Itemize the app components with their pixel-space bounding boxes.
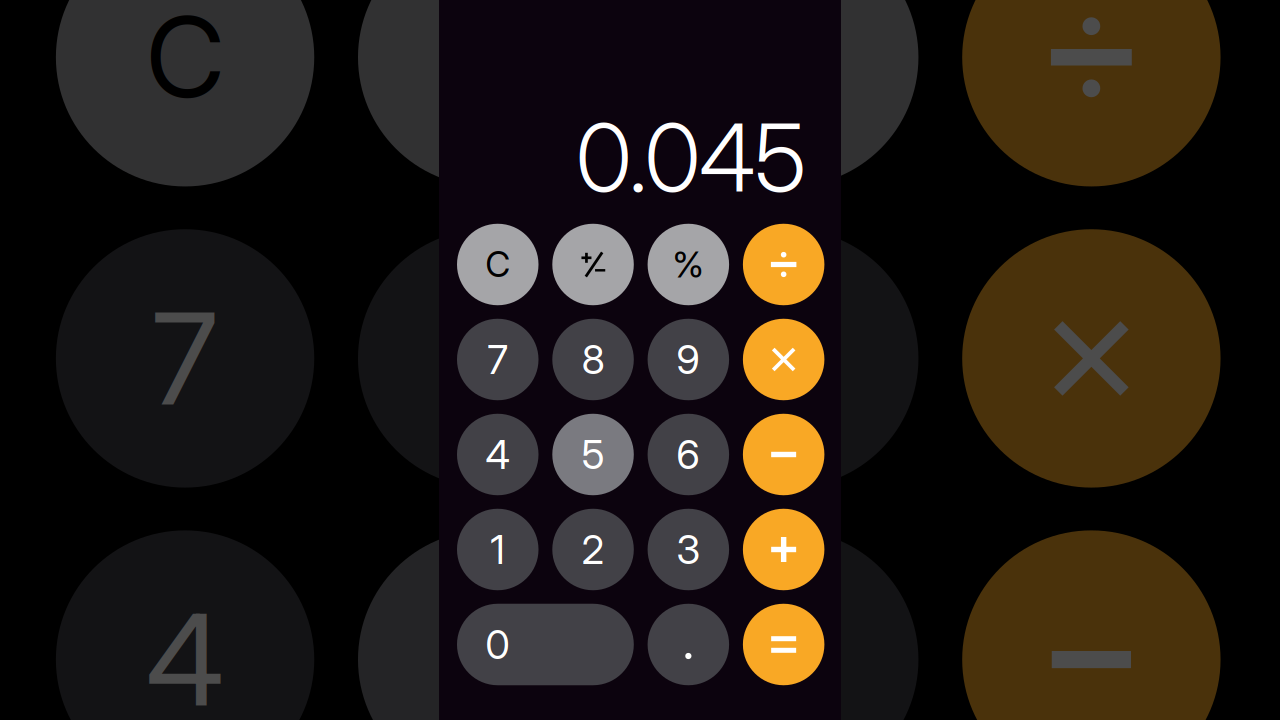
button[interactable]: 9 xyxy=(648,319,729,400)
staticText: % xyxy=(672,243,704,286)
staticText: 2 xyxy=(581,525,604,574)
button[interactable]: 3 xyxy=(648,509,729,590)
staticText: 1 xyxy=(486,525,501,574)
staticText: 0.045 xyxy=(572,101,802,214)
staticText: 8 xyxy=(581,335,604,384)
staticText: 3 xyxy=(672,525,696,574)
button[interactable]: 2 xyxy=(552,509,634,590)
button[interactable]: Multiply xyxy=(743,319,824,400)
button[interactable]: Minus xyxy=(743,414,824,495)
button[interactable]: 0 xyxy=(457,604,634,685)
staticText: 3 xyxy=(676,525,700,574)
button[interactable]: Equals xyxy=(743,604,824,685)
staticText: 5 xyxy=(581,430,604,479)
button[interactable]: Plus minus xyxy=(552,224,634,305)
button[interactable]: 4 xyxy=(457,414,538,495)
staticText: 8 xyxy=(577,335,600,384)
button[interactable]: 5 xyxy=(552,414,634,495)
staticText: 9 xyxy=(676,335,700,384)
staticText: 7 xyxy=(483,335,504,384)
staticText: % xyxy=(668,243,700,286)
staticText: 7 xyxy=(487,335,508,384)
staticText: 6 xyxy=(672,430,696,479)
staticText: 9 xyxy=(672,335,696,384)
button[interactable]: Divide xyxy=(743,224,824,305)
staticText: 1 xyxy=(490,525,505,574)
button[interactable]: % xyxy=(648,224,729,305)
button[interactable]: 6 xyxy=(648,414,729,495)
staticText: 0 xyxy=(485,620,510,669)
button[interactable]: 1 xyxy=(457,509,538,590)
button[interactable]: Plus xyxy=(743,509,824,590)
button[interactable]: 7 xyxy=(457,319,538,400)
staticText: C xyxy=(481,243,506,285)
button[interactable]: C xyxy=(457,224,538,305)
button[interactable]: 8 xyxy=(552,319,634,400)
staticText: 5 xyxy=(577,430,600,479)
staticText: 4 xyxy=(481,430,506,479)
staticText: 4 xyxy=(485,430,510,479)
staticText: C xyxy=(485,243,510,285)
button[interactable]: Decimal point xyxy=(648,604,729,685)
staticText: 0.045 xyxy=(576,101,806,214)
staticText: 2 xyxy=(577,525,600,574)
staticText: 0 xyxy=(481,620,506,669)
staticText: 6 xyxy=(676,430,700,479)
